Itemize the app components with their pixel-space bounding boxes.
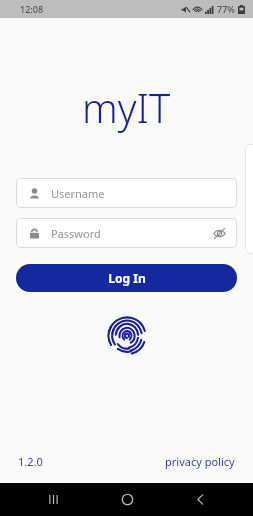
- button[interactable]: Username: [16, 178, 237, 208]
- button[interactable]: Recent apps: [33, 483, 73, 516]
- button[interactable]: privacy policy: [165, 454, 235, 469]
- staticText: Password: [51, 226, 101, 241]
- button[interactable]: Home: [107, 483, 147, 516]
- button[interactable]: Log In: [16, 264, 237, 292]
- button[interactable]: Password: [16, 218, 237, 248]
- staticText: 77%: [217, 3, 235, 15]
- staticText: myIT: [82, 80, 171, 134]
- button[interactable]: Log in with fingerprint: [104, 312, 150, 358]
- staticText: 12:08: [20, 3, 44, 15]
- staticText: privacy policy: [165, 454, 235, 469]
- staticText: 1.2.0: [18, 454, 43, 469]
- staticText: Username: [51, 186, 105, 201]
- button[interactable]: Back: [180, 483, 220, 516]
- staticText: Log In: [108, 270, 146, 286]
- button[interactable]: Show password: [211, 225, 227, 241]
